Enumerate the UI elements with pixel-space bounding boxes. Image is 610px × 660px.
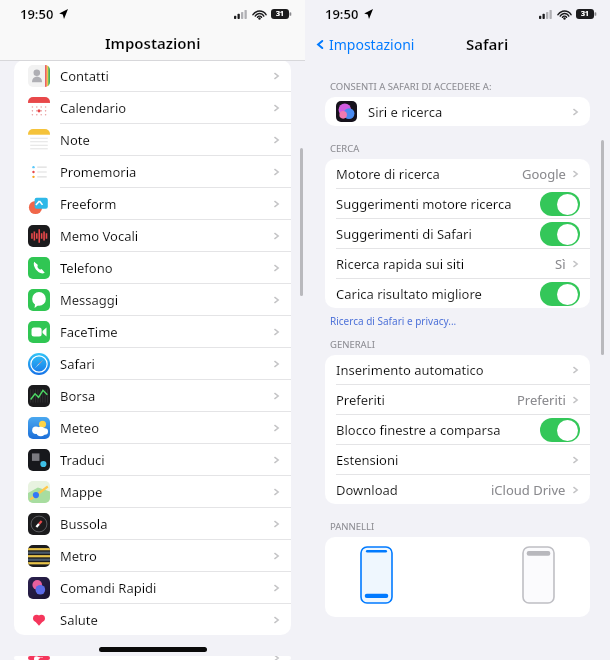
button[interactable]: Safari [14, 348, 291, 380]
button[interactable]: Salute [14, 604, 291, 635]
button[interactable]: Borsa [14, 380, 291, 412]
button[interactable]: Motore di ricerca [336, 159, 580, 188]
button[interactable]: Note [14, 124, 291, 156]
button[interactable]: Telefono [14, 252, 291, 284]
staticText: Mappe [60, 483, 103, 501]
button[interactable]: Memo Vocali [14, 220, 291, 252]
button[interactable]: Bussola [14, 508, 291, 540]
staticText: FaceTime [60, 323, 118, 341]
staticText: PANNELLI [330, 520, 375, 533]
staticText: Salute [60, 611, 98, 629]
button[interactable]: Promemoria [14, 156, 291, 188]
staticText: Impostazioni [329, 35, 415, 54]
staticText: Suggerimenti di Safari [336, 225, 472, 243]
button[interactable]: Inserimento automatico [336, 355, 580, 384]
staticText: Estensioni [336, 451, 399, 469]
staticText: Impostazioni [105, 33, 201, 53]
staticText: iCloud Drive [491, 481, 566, 499]
button[interactable]: Barra schede in basso [361, 547, 392, 603]
staticText: Suggerimenti motore ricerca [336, 195, 512, 213]
button[interactable]: Comandi Rapidi [14, 572, 291, 604]
staticText: Google [522, 165, 566, 183]
staticText: 19:50 [325, 5, 359, 23]
staticText: 31 [276, 9, 285, 19]
staticText: Preferiti [517, 391, 566, 409]
staticText: Traduci [60, 451, 105, 469]
staticText: Messaggi [60, 291, 119, 309]
staticText: Bussola [60, 515, 108, 533]
button[interactable]: Messaggi [14, 284, 291, 316]
button[interactable]: Suggerimenti motore ricerca [336, 189, 580, 218]
button[interactable]: Metro [14, 540, 291, 572]
staticText: Borsa [60, 387, 96, 405]
staticText: Promemoria [60, 163, 137, 181]
staticText: Meteo [60, 419, 100, 437]
staticText: Download [336, 481, 398, 499]
staticText: Memo Vocali [60, 227, 139, 245]
staticText: Metro [60, 547, 97, 565]
staticText: Siri e ricerca [368, 103, 443, 121]
staticText: Ricerca di Safari e privacy... [330, 314, 457, 328]
staticText: Safari [60, 355, 95, 373]
staticText: Carica risultato migliore [336, 285, 482, 303]
button[interactable]: Blocco finestre a comparsa [336, 415, 580, 444]
staticText: Note [60, 131, 90, 149]
button[interactable]: Ricerca di Safari e privacy... [330, 314, 457, 328]
button[interactable]: FaceTime [14, 316, 291, 348]
button[interactable]: Download [336, 475, 580, 504]
button[interactable]: Carica risultato migliore [336, 279, 580, 308]
button[interactable]: Contatti [14, 60, 291, 92]
staticText: GENERALI [330, 338, 375, 351]
button[interactable]: Traduci [14, 444, 291, 476]
staticText: Comandi Rapidi [60, 579, 157, 597]
button[interactable]: Impostazioni [315, 35, 415, 54]
staticText: Preferiti [336, 391, 385, 409]
staticText: Safari [466, 34, 509, 54]
staticText: 19:50 [20, 5, 54, 23]
staticText: CERCA [330, 142, 360, 155]
button[interactable]: Preferiti [336, 385, 580, 414]
button[interactable]: Siri e ricerca [336, 97, 580, 126]
staticText: Ricerca rapida sui siti [336, 255, 465, 273]
staticText: Blocco finestre a comparsa [336, 421, 501, 439]
staticText: Telefono [60, 259, 113, 277]
staticText: Contatti [60, 67, 109, 85]
button[interactable]: Mappe [14, 476, 291, 508]
staticText: Freeform [60, 195, 117, 213]
staticText: Sì [555, 255, 566, 273]
button[interactable]: Meteo [14, 412, 291, 444]
button[interactable]: Estensioni [336, 445, 580, 474]
staticText: CONSENTI A SAFARI DI ACCEDERE A: [330, 80, 492, 93]
staticText: Motore di ricerca [336, 165, 440, 183]
button[interactable]: Musica [14, 656, 291, 660]
button[interactable]: Barra schede singola [523, 547, 554, 603]
button[interactable]: Calendario [14, 92, 291, 124]
button[interactable]: Suggerimenti di Safari [336, 219, 580, 248]
button[interactable]: Ricerca rapida sui siti [336, 249, 580, 278]
staticText: Inserimento automatico [336, 361, 484, 379]
staticText: Calendario [60, 99, 127, 117]
staticText: 31 [581, 9, 590, 19]
button[interactable]: Freeform [14, 188, 291, 220]
